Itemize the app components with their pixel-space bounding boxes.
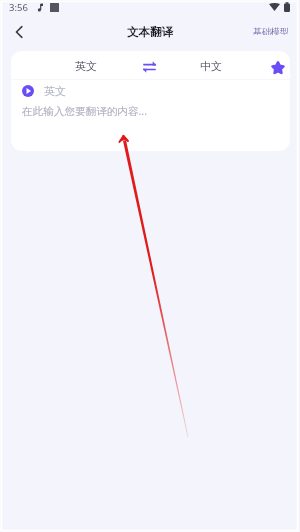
- button[interactable]: Back: [0, 19, 37, 44]
- staticText: 在此输入您要翻译的内容...: [22, 104, 148, 118]
- button[interactable]: 中文: [179, 51, 243, 79]
- button[interactable]: Favourite: [265, 55, 290, 80]
- button[interactable]: 基础模型: [244, 19, 300, 44]
- staticText: 中文: [200, 59, 222, 73]
- button[interactable]: Swap languages: [137, 54, 162, 79]
- staticText: 基础模型: [253, 26, 289, 35]
- staticText: 文本翻译: [127, 25, 173, 39]
- button[interactable]: 英文: [54, 51, 118, 79]
- staticText: 3:56: [9, 1, 28, 14]
- button[interactable]: Play pronunciation: [22, 85, 34, 97]
- staticText: 英文: [75, 59, 97, 73]
- staticText: 英文: [44, 84, 66, 98]
- button[interactable]: 在此输入您要翻译的内容...: [11, 104, 290, 151]
